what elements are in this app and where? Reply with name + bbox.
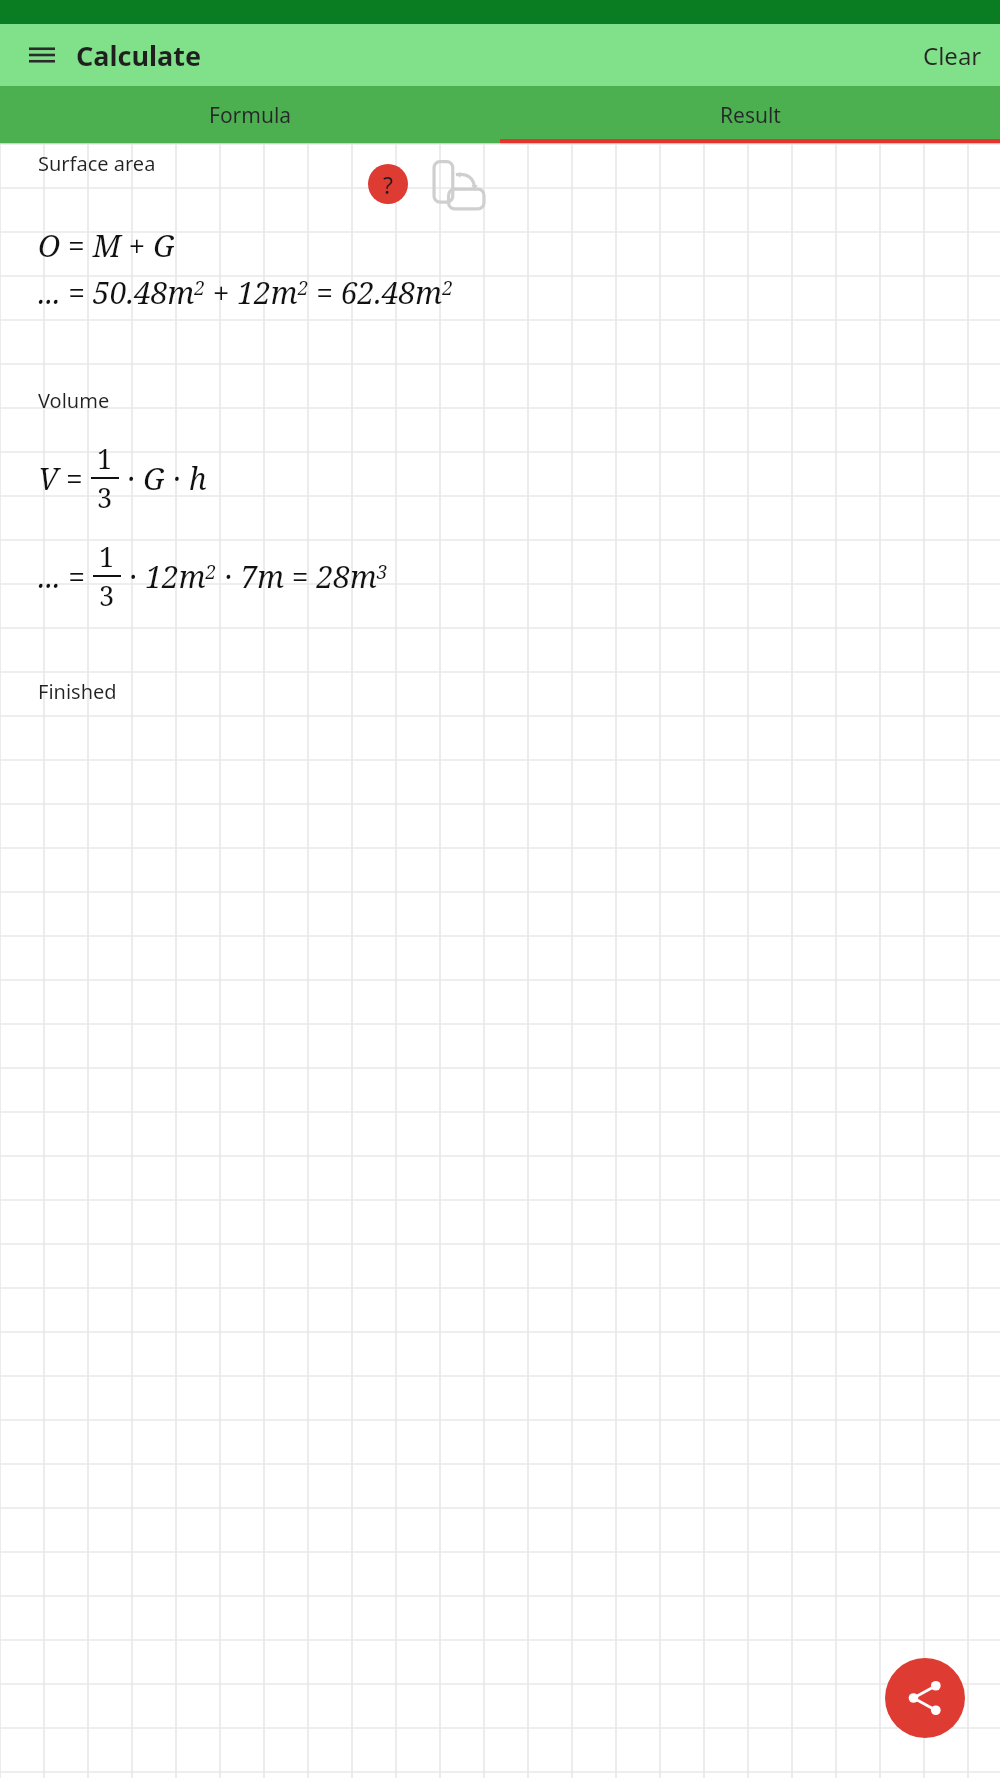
staticText: ... = [38,556,93,597]
button[interactable]: Share [885,1658,965,1738]
button[interactable]: Rotate screen [433,159,485,211]
staticText: · G · h [119,458,207,499]
staticText: · 12m2 · 7m = 28m3 [121,556,388,597]
staticText: 1 [99,538,115,575]
button[interactable]: Formula [0,86,500,144]
staticText: V = [38,458,91,499]
staticText: 3 [99,577,115,614]
staticText: Finished [38,678,117,705]
staticText: Result [720,101,781,130]
button[interactable]: Open navigation menu [20,33,64,77]
button[interactable]: Clear [905,24,1000,86]
staticText: Clear [923,39,982,72]
button[interactable]: Result [500,86,1000,144]
staticText: ... = 50.48m2 + 12m2 = 62.48m2 [38,272,453,313]
staticText: Calculate [76,37,202,74]
staticText: Volume [38,387,110,414]
staticText: 1 [97,440,113,477]
button[interactable]: Help [368,164,408,204]
staticText: Formula [209,101,292,130]
staticText: O = M + G [38,225,175,266]
staticText: Surface area [38,150,156,177]
staticText: 3 [97,479,113,516]
staticText: ? [383,169,393,200]
